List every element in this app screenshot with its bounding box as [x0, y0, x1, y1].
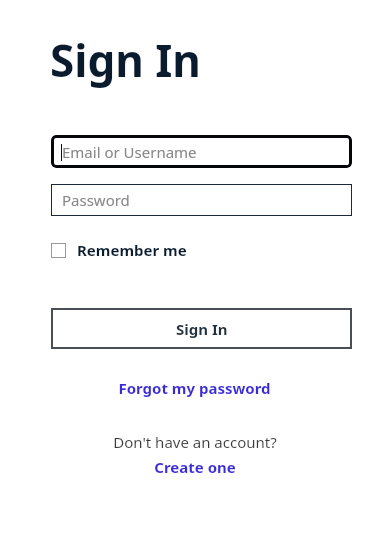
staticText: Sign In [176, 319, 228, 339]
button[interactable]: Sign In [51, 308, 352, 349]
staticText: Sign In [50, 30, 201, 90]
button[interactable]: Forgot my password [112, 376, 277, 400]
staticText: Email or Username [62, 142, 197, 162]
button[interactable]: Remember me [51, 240, 187, 260]
button[interactable]: Password [51, 184, 352, 216]
staticText: Don't have an account? [113, 432, 277, 452]
button[interactable]: Create one [148, 456, 242, 478]
button[interactable]: Email or Username [51, 135, 352, 168]
staticText: Remember me [77, 240, 187, 260]
staticText: Password [62, 190, 130, 210]
